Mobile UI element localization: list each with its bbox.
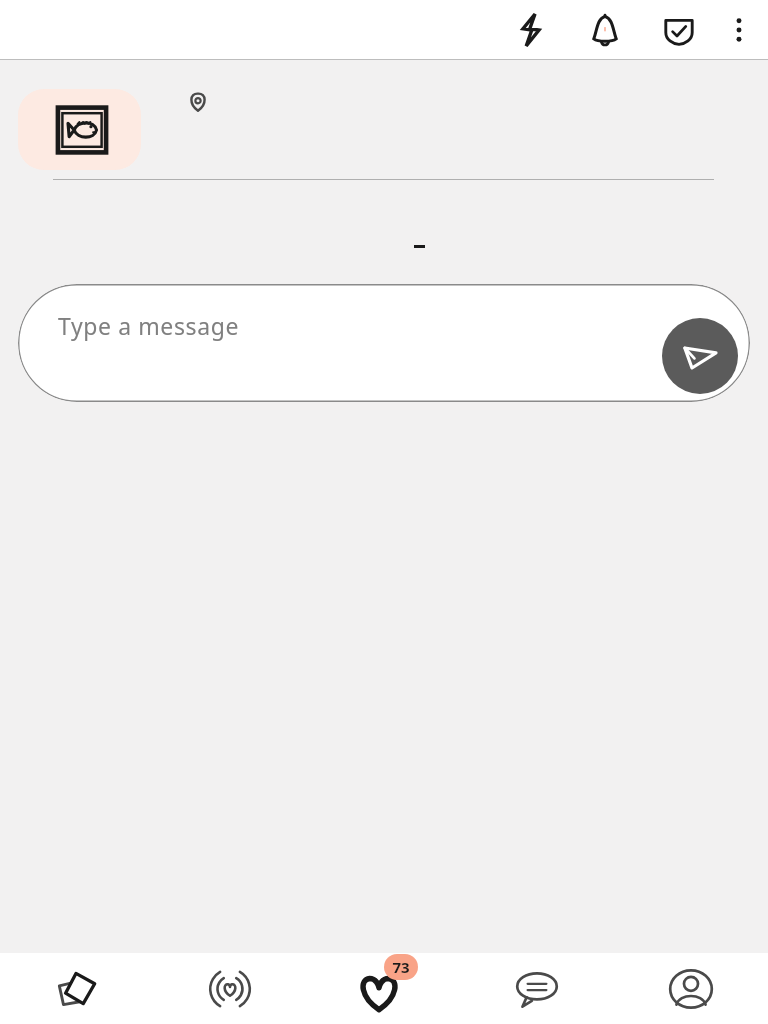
button[interactable]: Likes, 73 new [306,953,460,1024]
button[interactable]: Type a message [18,284,750,402]
button[interactable]: Seen [186,90,210,114]
button[interactable]: Send [662,318,738,394]
button[interactable]: Verified [642,0,716,60]
button[interactable]: Broadcast [153,953,306,1024]
staticText: 73 [392,957,410,977]
button[interactable]: More options [716,0,762,60]
button[interactable]: Profile [614,953,768,1024]
button[interactable]: Photo message [18,89,141,170]
button[interactable]: Notifications [568,0,642,60]
staticText: Type a message [58,310,239,341]
button[interactable]: Messages [460,953,614,1024]
button[interactable]: Cards [0,953,153,1024]
button[interactable]: Flash [494,0,568,60]
